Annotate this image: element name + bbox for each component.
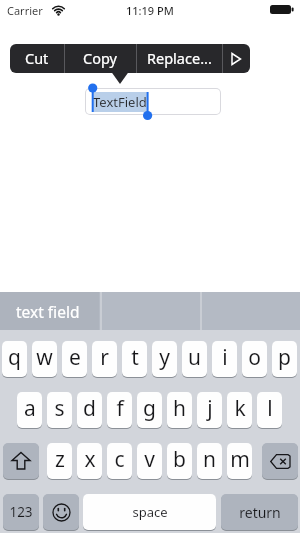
button[interactable]: f (107, 392, 132, 428)
staticText: TextField (93, 93, 147, 111)
staticText: c (114, 445, 125, 474)
staticText: text field (16, 301, 80, 322)
button[interactable]: g (137, 392, 162, 428)
button[interactable]: y (152, 341, 177, 377)
staticText: s (54, 394, 65, 423)
staticText: Copy (83, 48, 117, 68)
button[interactable]: b (167, 443, 192, 479)
staticText: return (239, 503, 281, 522)
button[interactable]: k (227, 392, 252, 428)
staticText: g (143, 394, 156, 423)
staticText: x (84, 445, 96, 474)
button[interactable]: Replace... (136, 44, 223, 73)
button[interactable]: w (32, 341, 57, 377)
staticText: m (230, 445, 250, 474)
button[interactable]: i (212, 341, 237, 377)
button[interactable]: d (77, 392, 102, 428)
staticText: p (278, 343, 291, 372)
staticText: space (132, 503, 168, 521)
button[interactable]: text field (0, 292, 99, 330)
staticText: v (144, 445, 155, 474)
staticText: a (24, 394, 36, 423)
button[interactable]: o (242, 341, 267, 377)
staticText: y (159, 343, 170, 372)
button[interactable]: x (77, 443, 102, 479)
staticText: Carrier (7, 3, 43, 18)
button[interactable]: space (83, 494, 216, 530)
staticText: o (248, 343, 261, 372)
staticText: w (36, 343, 53, 372)
button[interactable] (85, 88, 221, 115)
button[interactable]: c (107, 443, 132, 479)
button[interactable]: v (137, 443, 162, 479)
button[interactable]: q (2, 341, 27, 377)
staticText: i (222, 343, 228, 372)
staticText: l (267, 394, 273, 423)
staticText: r (100, 343, 109, 372)
button[interactable]: 123 (3, 494, 39, 530)
button[interactable] (43, 494, 79, 530)
button[interactable]: e (62, 341, 87, 377)
staticText: Replace... (147, 48, 212, 68)
button[interactable]: n (197, 443, 222, 479)
button[interactable] (262, 443, 298, 479)
button[interactable]: u (182, 341, 207, 377)
staticText: k (234, 394, 246, 423)
button[interactable]: s (47, 392, 72, 428)
button[interactable]: return (221, 494, 298, 530)
button[interactable]: Copy (64, 44, 136, 73)
button[interactable]: Cut (10, 44, 64, 73)
staticText: e (69, 343, 81, 372)
button[interactable] (3, 443, 39, 479)
button[interactable]: p (272, 341, 297, 377)
button[interactable]: m (227, 443, 252, 479)
button[interactable]: l (257, 392, 282, 428)
staticText: d (83, 394, 96, 423)
button[interactable]: z (47, 443, 72, 479)
staticText: f (116, 394, 124, 423)
button[interactable]: r (92, 341, 117, 377)
button[interactable]: h (167, 392, 192, 428)
staticText: q (8, 343, 21, 372)
staticText: j (207, 394, 213, 423)
staticText: z (55, 445, 65, 474)
button[interactable] (222, 44, 250, 73)
button[interactable]: j (197, 392, 222, 428)
staticText: 123 (9, 503, 33, 521)
staticText: h (173, 394, 186, 423)
staticText: b (173, 445, 186, 474)
staticText: u (188, 343, 201, 372)
staticText: 11:19 PM (126, 3, 174, 18)
button[interactable]: t (122, 341, 147, 377)
button[interactable]: a (17, 392, 42, 428)
staticText: t (131, 343, 139, 372)
staticText: n (203, 445, 216, 474)
staticText: Cut (25, 48, 49, 68)
